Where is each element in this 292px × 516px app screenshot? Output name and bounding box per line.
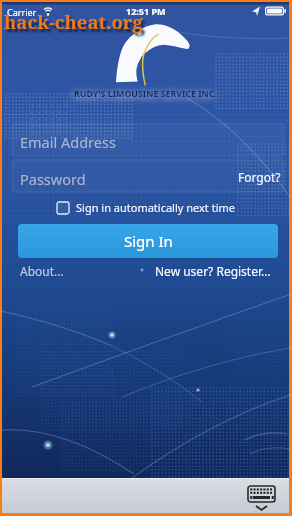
staticText: Password [20, 169, 86, 189]
staticText: Email Address [20, 132, 116, 152]
button[interactable]: Sign In [18, 224, 278, 258]
staticText: Forgot? [238, 169, 281, 185]
staticText: About... [20, 263, 64, 279]
button[interactable] [247, 485, 277, 512]
staticText: hack-cheat.org [4, 9, 143, 34]
button[interactable]: About... [20, 263, 64, 279]
staticText: Sign in automatically next time [76, 200, 235, 215]
staticText: New user? Register... [155, 263, 271, 279]
staticText: Sign In [124, 231, 173, 251]
staticText: RUDY'S LIMOUSINE SERVICE INC. [74, 88, 217, 100]
staticText: 12:51 PM [126, 5, 166, 17]
button[interactable]: New user? Register... [155, 263, 271, 279]
button[interactable]: Forgot? [238, 169, 281, 185]
button[interactable]: Sign in automatically next time [2, 200, 289, 215]
staticText: Carrier [7, 6, 37, 18]
